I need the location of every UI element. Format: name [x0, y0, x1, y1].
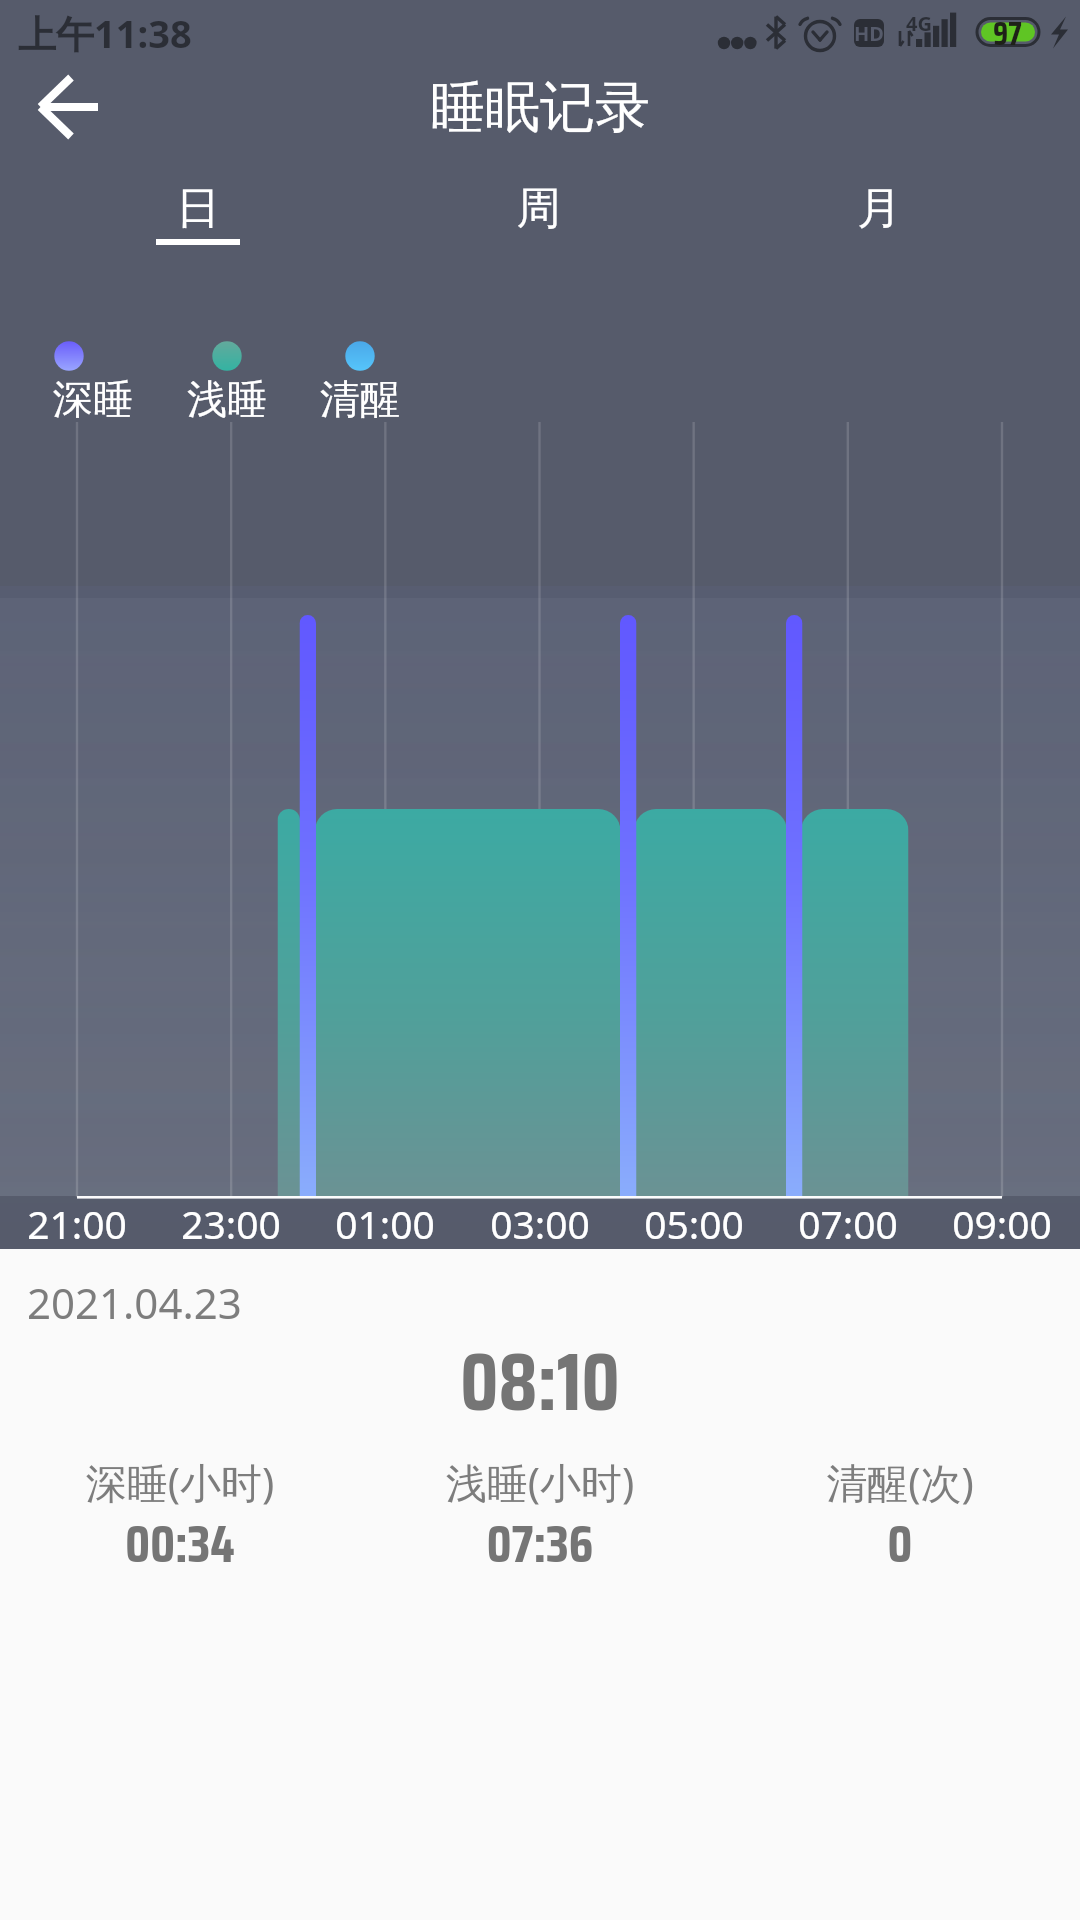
- staticText: 周: [368, 181, 709, 236]
- staticText: 0: [720, 1503, 1080, 1585]
- button[interactable]: 月: [709, 160, 1050, 215]
- staticText: 深睡(小时): [0, 1454, 360, 1510]
- staticText: 05:00: [594, 1197, 794, 1250]
- staticText: 深睡: [3, 374, 183, 424]
- staticText: 97: [993, 9, 1022, 59]
- staticText: 清醒: [270, 374, 450, 424]
- staticText: 4G: [906, 10, 932, 37]
- button[interactable]: 浅睡(小时): [360, 1454, 720, 1604]
- staticText: 07:36: [360, 1503, 720, 1585]
- staticText: 清醒(次): [720, 1454, 1080, 1510]
- staticText: 睡眠记录: [0, 73, 1080, 142]
- button[interactable]: 返回: [30, 67, 110, 147]
- staticText: 08:10: [0, 1319, 1080, 1445]
- staticText: 上午11:38: [18, 7, 192, 59]
- staticText: 月: [709, 181, 1050, 236]
- button[interactable]: 清醒(次): [720, 1454, 1080, 1604]
- staticText: 01:00: [285, 1197, 485, 1250]
- staticText: 日: [28, 181, 368, 236]
- button[interactable]: 周: [368, 160, 709, 215]
- button[interactable]: 深睡(小时): [0, 1454, 360, 1604]
- staticText: 09:00: [902, 1197, 1080, 1250]
- staticText: 00:34: [0, 1503, 360, 1585]
- staticText: HD: [854, 20, 884, 47]
- staticText: 23:00: [131, 1197, 331, 1250]
- staticText: 浅睡(小时): [360, 1454, 720, 1510]
- button[interactable]: 日: [28, 160, 368, 215]
- staticText: 2021.04.23: [27, 1274, 242, 1331]
- staticText: 浅睡: [137, 374, 317, 424]
- staticText: 21:00: [0, 1197, 177, 1250]
- staticText: 03:00: [440, 1197, 640, 1250]
- staticText: 07:00: [748, 1197, 948, 1250]
